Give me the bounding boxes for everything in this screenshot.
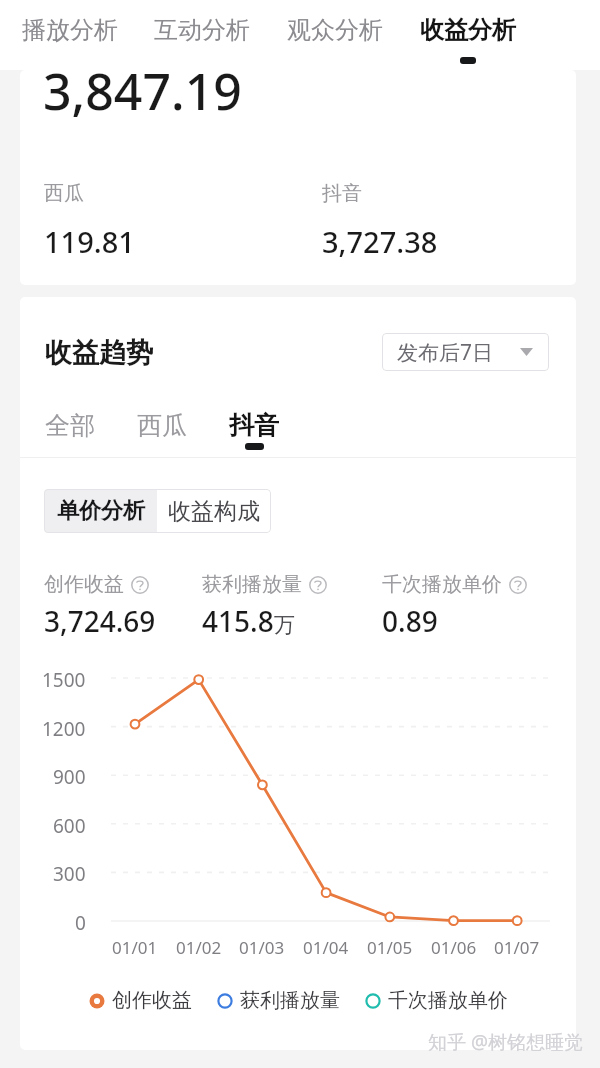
staticText: 播放分析 bbox=[22, 15, 118, 45]
staticText: 119.81 bbox=[44, 222, 135, 261]
staticText: 01/07 bbox=[494, 936, 540, 959]
staticText: 发布后7日 bbox=[397, 338, 494, 367]
staticText: 300 bbox=[53, 861, 86, 887]
staticText: 创作收益 bbox=[44, 572, 124, 597]
staticText: 获利播放量 bbox=[240, 988, 340, 1013]
button[interactable]: 创作收益 说明 bbox=[44, 572, 149, 597]
staticText: 01/01 bbox=[112, 936, 158, 959]
staticText: 900 bbox=[53, 764, 86, 790]
staticText: 01/03 bbox=[239, 936, 285, 959]
staticText: 0 bbox=[75, 910, 86, 936]
staticText: 3,847.19 bbox=[43, 70, 242, 125]
staticText: 抖音 bbox=[322, 181, 362, 206]
staticText: 千次播放单价 bbox=[388, 988, 508, 1013]
staticText: 观众分析 bbox=[287, 15, 383, 45]
staticText: 知乎 @树铭想睡觉 bbox=[428, 1029, 584, 1055]
staticText: 600 bbox=[53, 813, 86, 839]
staticText: 全部 bbox=[45, 410, 95, 441]
button[interactable]: 创作收益 bbox=[89, 988, 192, 1013]
button[interactable]: 获利播放量 bbox=[217, 988, 340, 1013]
staticText: 415.8 bbox=[202, 602, 274, 640]
button[interactable]: 发布后7日 bbox=[382, 333, 549, 371]
staticText: 收益趋势 bbox=[45, 336, 153, 370]
button[interactable]: 观众分析 bbox=[287, 15, 383, 57]
staticText: 收益分析 bbox=[420, 15, 516, 45]
button[interactable]: 西瓜 bbox=[137, 410, 187, 443]
button[interactable]: 收益构成 bbox=[157, 489, 271, 533]
button[interactable]: 千次播放单价 bbox=[365, 988, 508, 1013]
staticText: 单价分析 bbox=[57, 497, 145, 525]
button[interactable]: 互动分析 bbox=[154, 15, 250, 57]
staticText: 抖音 bbox=[229, 410, 279, 441]
staticText: 互动分析 bbox=[154, 15, 250, 45]
button[interactable]: 单价分析 bbox=[44, 489, 157, 533]
button[interactable]: 收益分析 bbox=[420, 15, 516, 64]
button[interactable]: 获利播放量 说明 bbox=[202, 572, 327, 597]
staticText: 千次播放单价 bbox=[382, 572, 502, 597]
staticText: 1200 bbox=[42, 716, 86, 742]
staticText: 01/05 bbox=[367, 936, 413, 959]
staticText: 获利播放量 bbox=[202, 572, 302, 597]
staticText: 01/04 bbox=[303, 936, 349, 959]
button[interactable]: 播放分析 bbox=[22, 15, 118, 57]
staticText: 0.89 bbox=[382, 602, 438, 640]
staticText: 创作收益 bbox=[112, 988, 192, 1013]
staticText: 收益构成 bbox=[168, 497, 260, 526]
button[interactable]: 全部 bbox=[45, 410, 95, 443]
staticText: 万 bbox=[274, 612, 295, 638]
staticText: 1500 bbox=[42, 667, 86, 693]
staticText: 西瓜 bbox=[137, 410, 187, 441]
button[interactable]: 抖音 bbox=[229, 410, 279, 450]
staticText: 3,724.69 bbox=[44, 602, 156, 640]
staticText: 3,727.38 bbox=[322, 222, 438, 261]
button[interactable]: 千次播放单价 说明 bbox=[382, 572, 527, 597]
staticText: 01/06 bbox=[431, 936, 477, 959]
staticText: 西瓜 bbox=[44, 181, 84, 206]
staticText: 01/02 bbox=[176, 936, 222, 959]
